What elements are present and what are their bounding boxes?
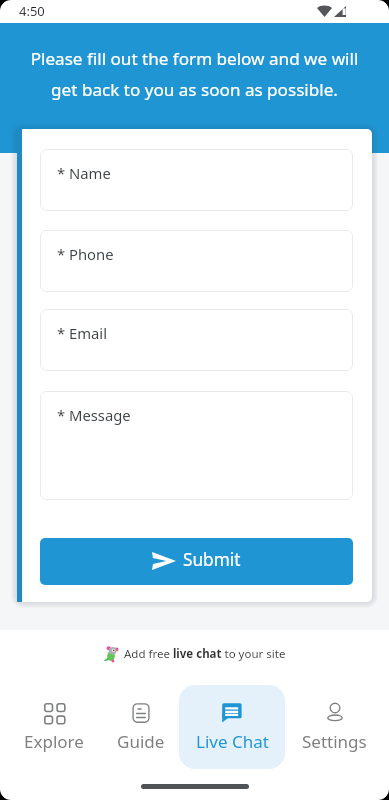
- button[interactable]: * Phone: [40, 230, 353, 292]
- staticText: 4:50: [19, 2, 45, 20]
- staticText: * Email: [57, 323, 107, 343]
- button[interactable]: * Email: [40, 309, 353, 371]
- staticText: Explore: [24, 730, 84, 753]
- staticText: * Name: [57, 163, 111, 183]
- button[interactable]: * Message: [40, 391, 353, 500]
- staticText: Submit: [183, 548, 241, 571]
- staticText: Please fill out the form below and we wi…: [29, 47, 360, 101]
- button[interactable]: Add free live chat to your site: [103, 646, 286, 662]
- staticText: Add free live chat to your site: [124, 646, 286, 662]
- button[interactable]: * Name: [40, 149, 353, 211]
- button[interactable]: Live Chat: [179, 685, 285, 769]
- staticText: Guide: [117, 730, 165, 753]
- staticText: * Message: [57, 405, 131, 425]
- button[interactable]: Guide: [103, 685, 178, 769]
- button[interactable]: Settings: [287, 685, 382, 769]
- staticText: Settings: [302, 730, 367, 753]
- button[interactable]: Explore: [7, 685, 101, 769]
- button[interactable]: Submit: [40, 538, 353, 585]
- staticText: * Phone: [57, 244, 114, 264]
- staticText: Live Chat: [196, 730, 269, 753]
